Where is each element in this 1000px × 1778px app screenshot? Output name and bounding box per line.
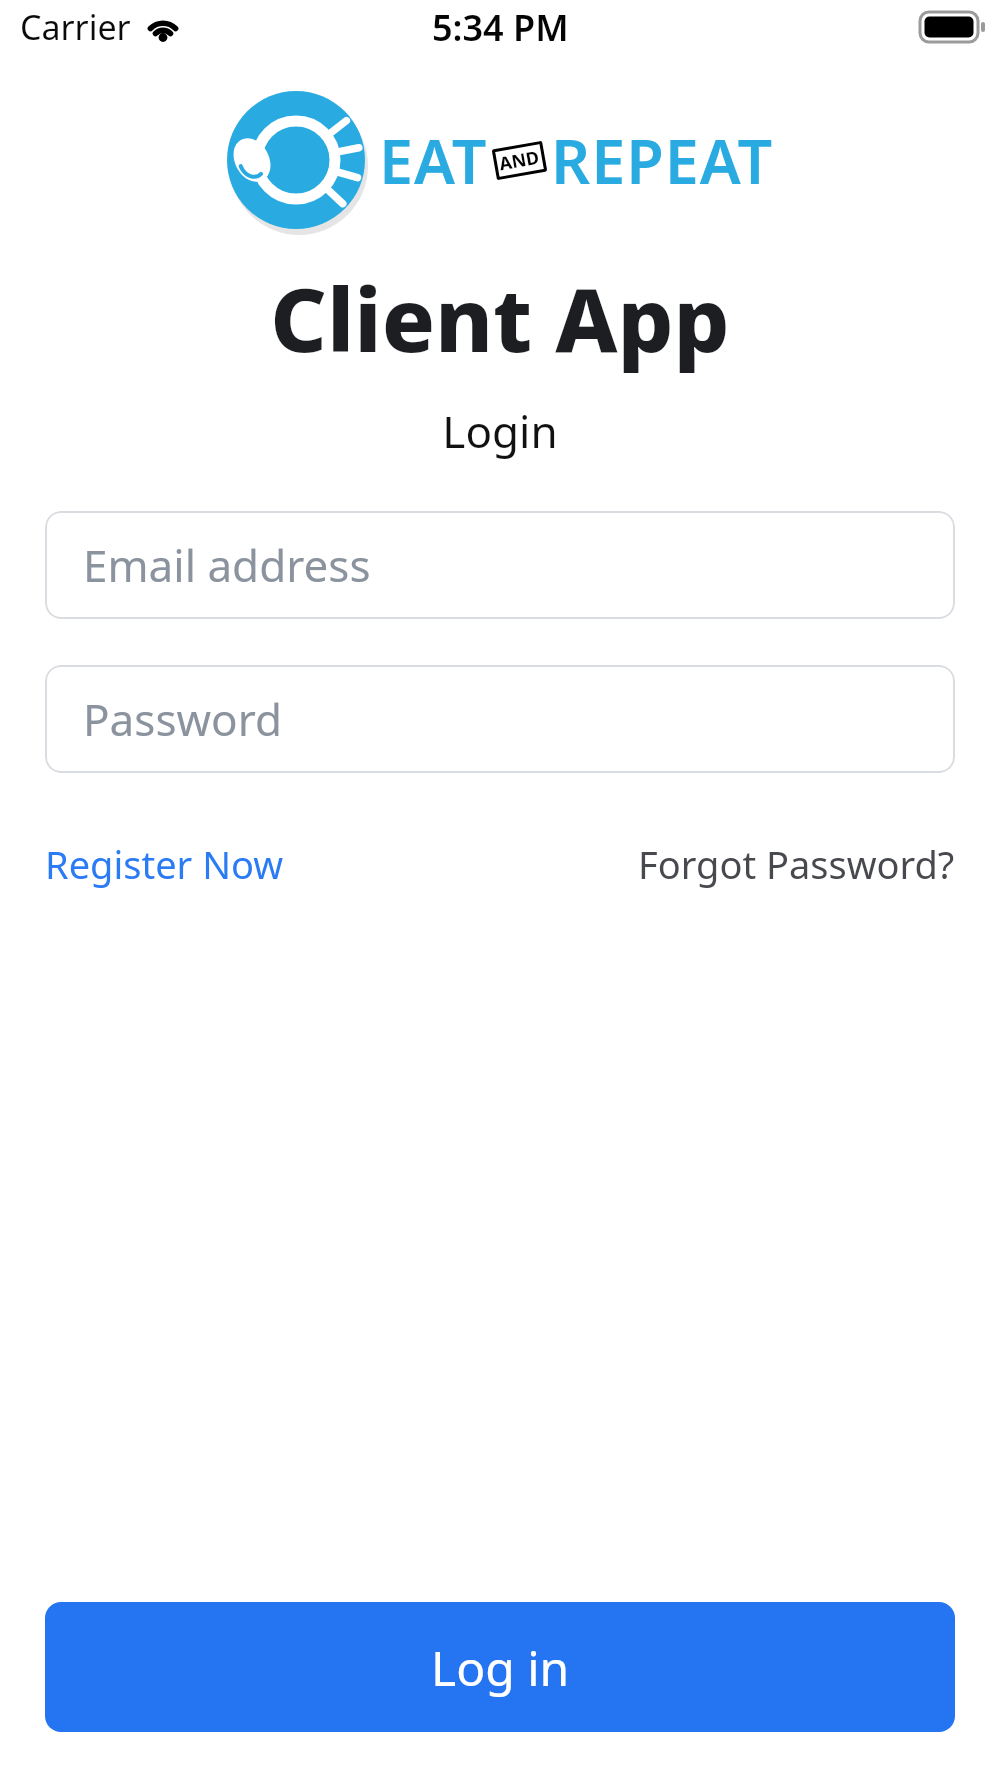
staticText: 5:34 PM xyxy=(432,3,569,52)
button[interactable]: Log in xyxy=(45,1602,955,1732)
staticText: Carrier xyxy=(20,4,131,50)
button[interactable]: Forgot Password? xyxy=(638,838,955,890)
staticText: Password xyxy=(83,689,283,749)
staticText: EAT xyxy=(379,119,488,202)
staticText: Email address xyxy=(83,535,371,595)
button[interactable]: Password xyxy=(45,665,955,773)
staticText: REPEAT xyxy=(551,119,774,202)
staticText: AND xyxy=(497,145,542,176)
staticText: Login xyxy=(0,401,1000,461)
staticText: Register Now xyxy=(45,838,284,890)
staticText: Client App xyxy=(0,258,1000,378)
button[interactable]: Register Now xyxy=(45,838,284,890)
button[interactable]: Email address xyxy=(45,511,955,619)
staticText: Log in xyxy=(431,1635,570,1700)
staticText: Forgot Password? xyxy=(638,838,955,890)
